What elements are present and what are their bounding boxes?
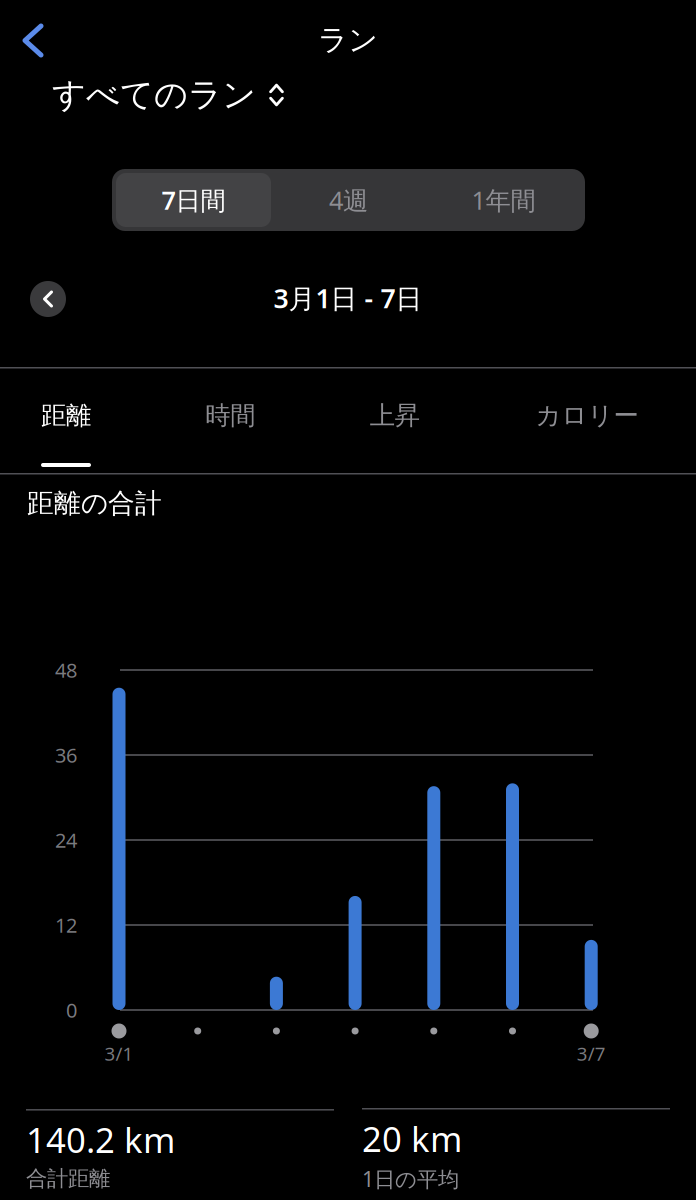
staticText: すべてのラン [52, 74, 256, 115]
staticText: 3月1日 - 7日 [273, 280, 422, 316]
staticText: 20 km [362, 1115, 462, 1161]
staticText: 合計距離 [26, 1166, 110, 1192]
button[interactable]: Back [0, 8, 74, 73]
staticText: 1日の平均 [362, 1164, 459, 1193]
staticText: カロリー [535, 400, 638, 431]
staticText: 距離の合計 [27, 487, 162, 520]
staticText: 4週 [329, 183, 368, 217]
button[interactable]: Previous week [0, 269, 82, 329]
staticText: ラン [318, 22, 378, 58]
button[interactable]: カロリー [534, 368, 640, 473]
button[interactable]: すべてのラン [0, 72, 696, 118]
button[interactable]: 時間 [205, 368, 255, 473]
staticText: 36 [55, 742, 77, 768]
staticText: 0 [66, 997, 77, 1023]
staticText: 7日間 [161, 183, 225, 217]
button[interactable]: 距離 [41, 368, 91, 473]
staticText: 48 [55, 657, 77, 683]
staticText: 時間 [205, 400, 255, 431]
staticText: 3/1 [104, 1041, 133, 1066]
staticText: 3/7 [577, 1041, 606, 1066]
staticText: 1年間 [471, 183, 535, 217]
staticText: 上昇 [370, 400, 420, 431]
button[interactable]: 7日間 [116, 173, 271, 227]
button[interactable]: 上昇 [370, 368, 420, 473]
button[interactable]: 1年間 [426, 173, 581, 227]
staticText: 24 [55, 827, 77, 853]
button[interactable]: 4週 [271, 173, 426, 227]
staticText: 距離 [41, 400, 91, 431]
staticText: 140.2 km [26, 1117, 175, 1163]
staticText: 12 [55, 912, 77, 938]
